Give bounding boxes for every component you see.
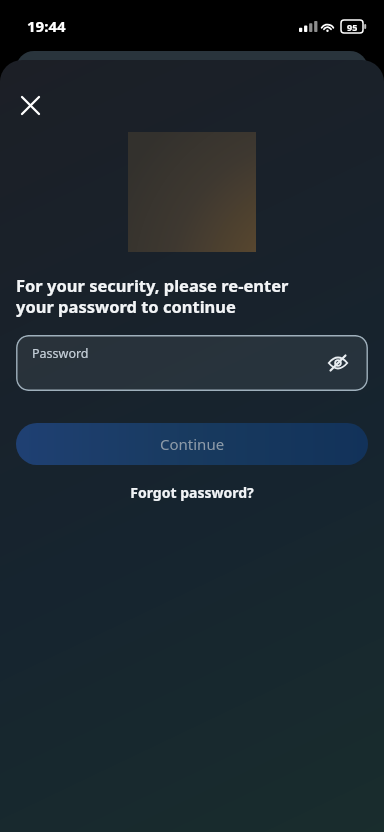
staticText: 95 — [347, 21, 358, 33]
staticText: Forgot password? — [130, 483, 254, 502]
staticText: For your security, please re-enter your … — [16, 274, 328, 318]
button[interactable]: Forgot password? — [120, 479, 264, 506]
staticText: Password — [32, 345, 89, 362]
button[interactable]: Close — [12, 87, 48, 123]
staticText: 19:44 — [27, 16, 66, 36]
button[interactable]: Continue — [16, 423, 368, 465]
staticText: Continue — [160, 434, 225, 454]
button[interactable]: Show password — [318, 343, 358, 383]
button[interactable]: Password — [16, 335, 368, 391]
